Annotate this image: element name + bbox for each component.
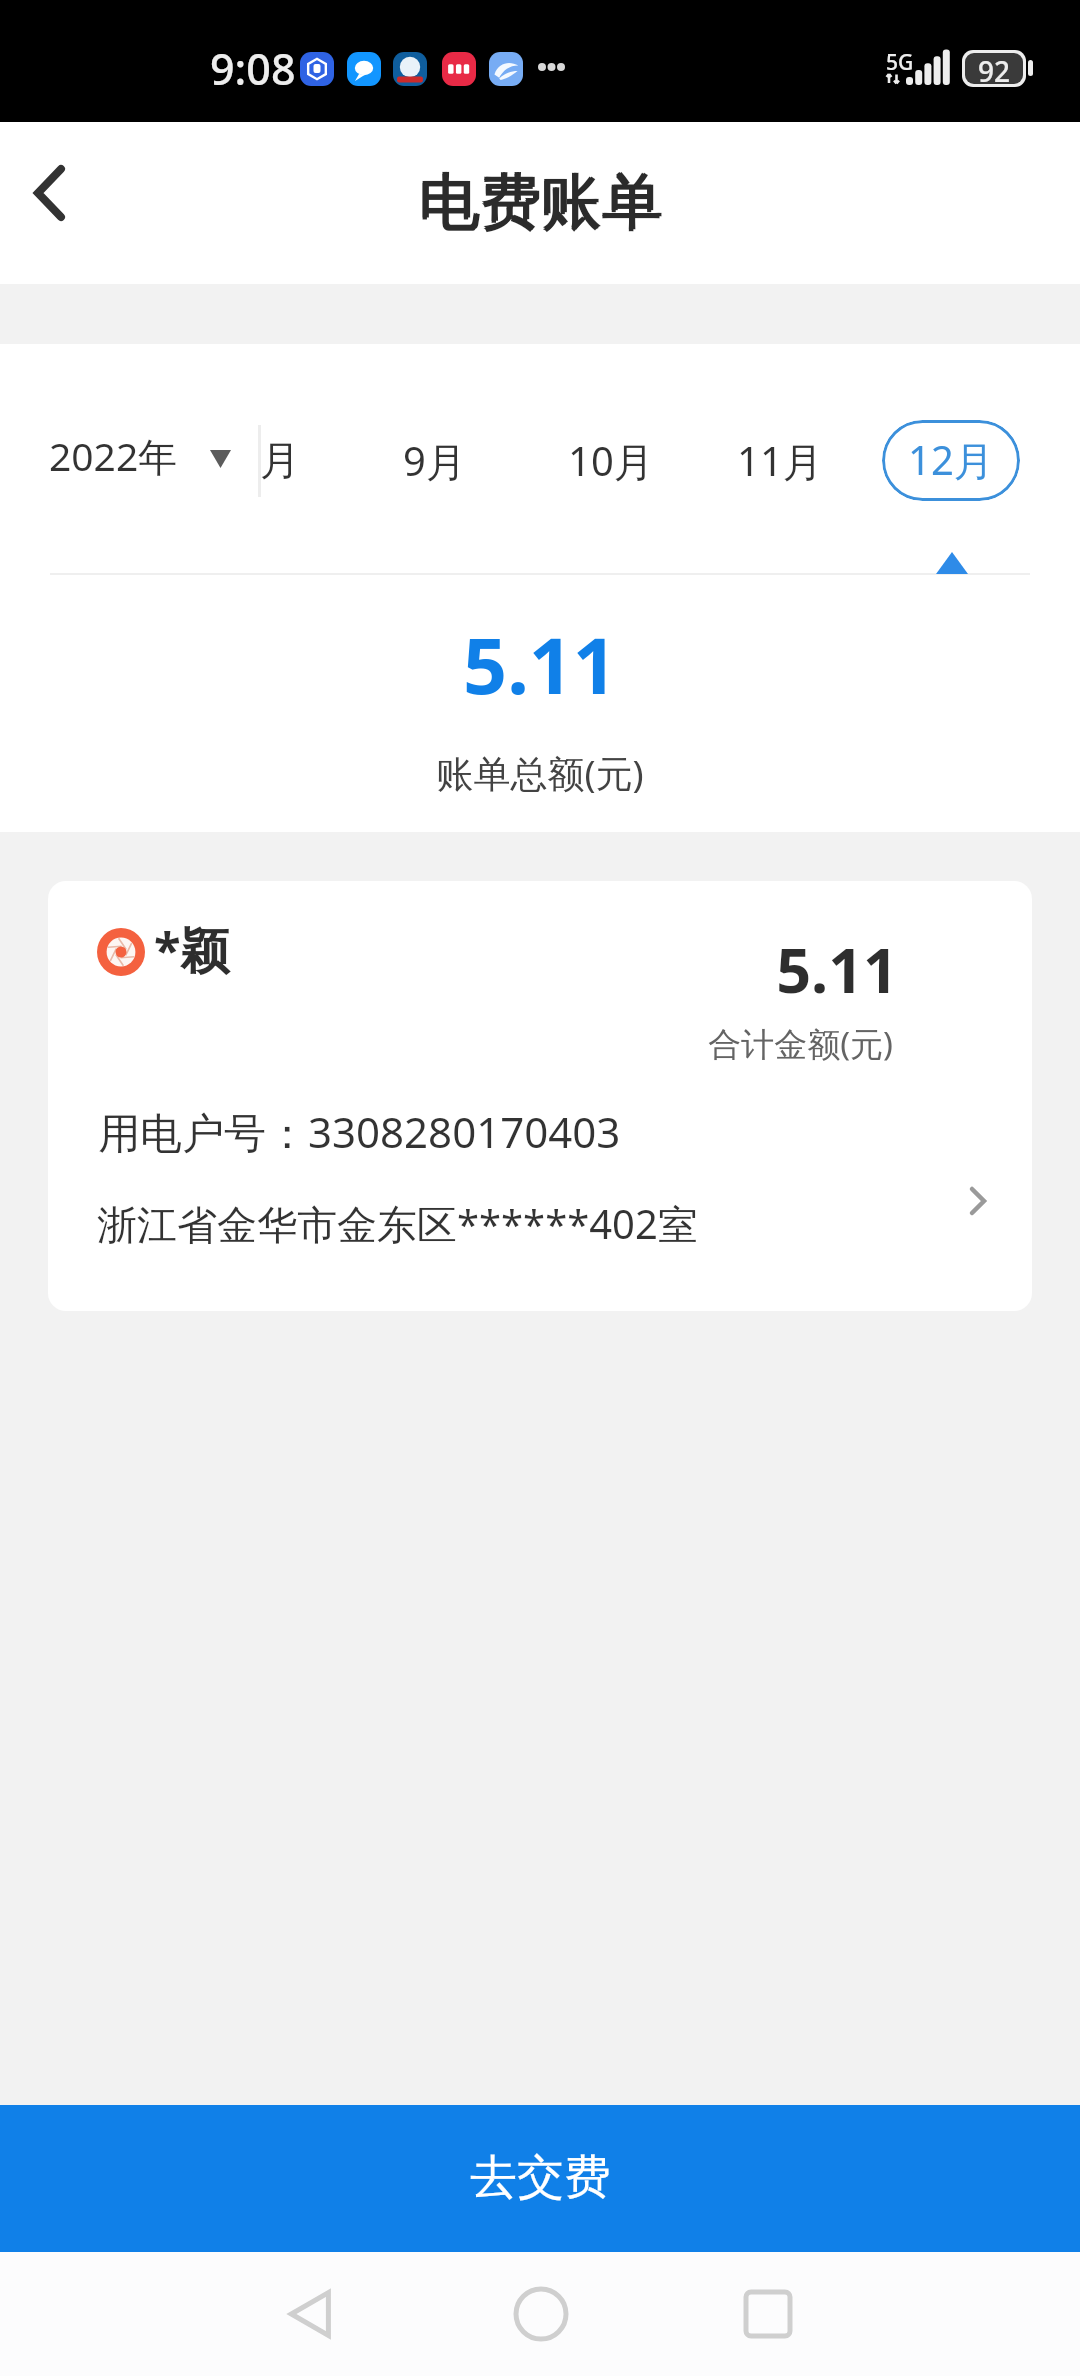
button[interactable]: 月 (238, 415, 322, 507)
staticText: 月 (260, 435, 300, 485)
button[interactable]: Details (948, 1171, 1014, 1251)
staticText: 9:08 (210, 39, 296, 98)
staticText: 电费账单 (0, 165, 1080, 286)
staticText: 92 (978, 53, 1011, 83)
staticText: 10月 (568, 433, 654, 488)
button[interactable]: Recent apps (739, 2285, 797, 2343)
staticText: 5.11 (593, 928, 898, 1011)
staticText: 2022年 (49, 429, 178, 482)
staticText: 12月 (908, 432, 994, 487)
button[interactable]: 2022年 (0, 409, 249, 502)
staticText: 5G (886, 48, 914, 77)
button[interactable]: Back (282, 2285, 340, 2343)
staticText: 电费账单 (2, 163, 1080, 284)
staticText: 账单总额(元) (0, 747, 1080, 798)
staticText: 浙江省金华市金东区******402室 (97, 1196, 698, 1251)
staticText: 11月 (737, 433, 823, 488)
button[interactable]: *颖 (48, 881, 1032, 1311)
staticText: *颖 (154, 916, 230, 983)
staticText: 9月 (403, 433, 466, 488)
staticText: 5.11 (0, 612, 1080, 717)
button[interactable]: Home (512, 2285, 570, 2343)
staticText: 电费账单 (0, 163, 1080, 284)
button[interactable]: 9月 (381, 415, 488, 507)
button[interactable]: 11月 (715, 415, 845, 507)
staticText: 去交费 (470, 2148, 611, 2207)
button[interactable]: Back (0, 135, 100, 271)
button[interactable]: 12月 (882, 420, 1020, 501)
staticText: 合计金额(元) (588, 1021, 893, 1066)
staticText: 用电户号：3308280170403 (98, 1103, 621, 1160)
button[interactable]: 去交费 (0, 2105, 1080, 2252)
button[interactable]: 10月 (546, 415, 676, 507)
